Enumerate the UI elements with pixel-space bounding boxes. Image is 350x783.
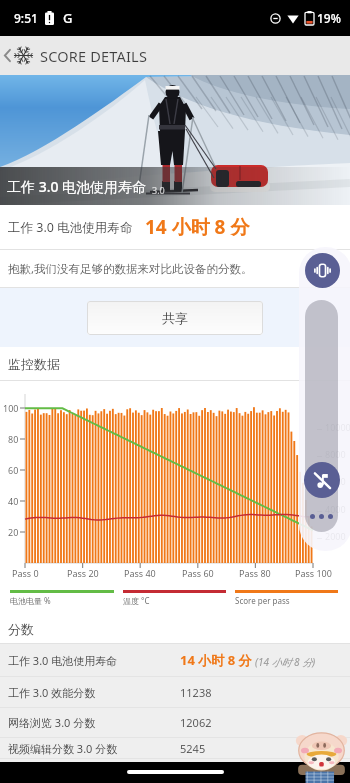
staticText: 网络浏览 3.0 分数 [8,715,96,730]
button[interactable]: 共享 [87,301,263,335]
staticText: 12062 [180,715,212,730]
button[interactable]: Mute [304,462,340,498]
staticText: Pass 80 [239,567,271,579]
staticText: 工作 3.0 效能分数 [8,685,96,700]
staticText: 视频编辑分数 3.0 分数 [8,741,118,756]
staticText: 9:51 [14,10,38,26]
staticText: Pass 40 [124,567,156,579]
staticText: Pass 20 [67,567,99,579]
staticText: SCORE DETAILS [40,46,148,66]
staticText: 80 [8,433,19,445]
staticText: (14 小时 8 分) [255,655,316,669]
button[interactable]: Back [0,36,14,75]
staticText: 20 [8,526,19,538]
button[interactable]: 工作 3.0 效能分数 [0,677,350,708]
button[interactable]: 网络浏览 3.0 分数 [0,708,350,738]
staticText: 监控数据 [8,356,60,372]
staticText: 温度 °C [123,595,150,606]
staticText: 工作 3.0 电池使用寿命 [7,177,147,196]
staticText: 分数 [8,621,34,637]
button[interactable]: 工作 3.0 电池使用寿命 [0,644,350,677]
staticText: 电池电量 % [10,595,51,606]
staticText: Score per pass [235,595,290,606]
button[interactable]: 视频编辑分数 3.0 分数 [0,738,350,759]
staticText: Pass 0 [12,567,39,579]
staticText: 工作 3.0 电池使用寿命 [8,219,133,236]
staticText: 60 [8,464,19,476]
staticText: 2000 [325,530,346,542]
staticText: 工作 3.0 电池使用寿命 [8,653,118,668]
staticText: 10000 [325,421,350,433]
button[interactable]: More options [305,505,338,527]
staticText: Pass 60 [182,567,214,579]
staticText: 共享 [162,310,188,326]
staticText: 14 小时 8 分 [145,214,250,240]
staticText: 抱歉,我们没有足够的数据来对比此设备的分数。 [8,261,253,277]
staticText: 4000 [325,503,346,515]
staticText: 40 [8,495,19,507]
staticText: G [63,9,73,27]
staticText: 11238 [180,685,212,700]
staticText: 8000 [325,448,346,460]
staticText: 6000 [325,475,346,487]
staticText: 100 [3,402,19,414]
button[interactable]: Vibrate [305,253,340,288]
staticText: 3.0 [152,184,165,196]
staticText: 5245 [180,741,206,756]
staticText: Pass 100 [295,567,332,579]
staticText: 14 小时 8 分 [180,651,252,669]
staticText: 19% [317,10,341,26]
